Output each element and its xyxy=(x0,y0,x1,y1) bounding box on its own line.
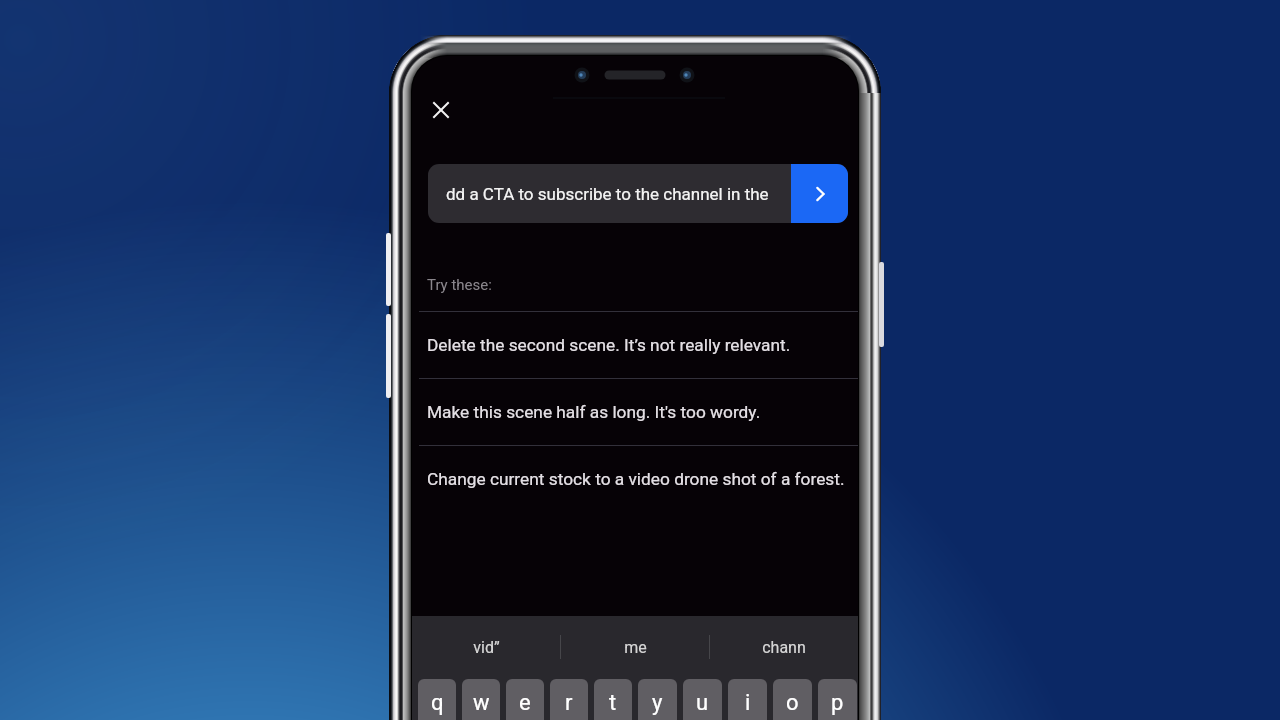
button[interactable]: i xyxy=(728,679,767,720)
button[interactable]: y xyxy=(638,679,677,720)
staticText: i xyxy=(745,690,751,716)
button[interactable]: w xyxy=(462,679,500,720)
staticText: chann xyxy=(762,638,806,657)
button[interactable]: e xyxy=(506,679,544,720)
staticText: u xyxy=(696,690,709,716)
button[interactable]: p xyxy=(818,679,857,720)
button[interactable]: Make this scene half as long. It's too w… xyxy=(412,379,858,445)
staticText: t xyxy=(609,690,617,716)
staticText: o xyxy=(786,690,799,716)
staticText: y xyxy=(652,690,663,716)
staticText: w xyxy=(473,690,490,716)
button[interactable]: vid” xyxy=(412,616,560,678)
staticText: q xyxy=(431,690,444,716)
button[interactable]: r xyxy=(550,679,588,720)
staticText: Delete the second scene. It’s not really… xyxy=(427,335,791,355)
button[interactable]: me xyxy=(561,616,709,678)
staticText: p xyxy=(831,690,844,716)
button[interactable]: t xyxy=(594,679,632,720)
button[interactable]: dd a CTA to subscribe to the channel in … xyxy=(428,164,848,223)
staticText: e xyxy=(519,690,531,716)
staticText: dd a CTA to subscribe to the channel in … xyxy=(446,184,785,204)
staticText: me xyxy=(624,638,647,657)
staticText: Try these: xyxy=(427,276,492,294)
staticText: Change current stock to a video drone sh… xyxy=(427,469,845,489)
button[interactable]: chann xyxy=(710,616,858,678)
button[interactable]: u xyxy=(683,679,722,720)
button[interactable]: q xyxy=(418,679,456,720)
button[interactable]: Delete the second scene. It’s not really… xyxy=(412,312,858,378)
button[interactable]: Change current stock to a video drone sh… xyxy=(412,446,858,512)
button[interactable]: Send xyxy=(791,164,848,223)
staticText: Make this scene half as long. It's too w… xyxy=(427,402,761,422)
button[interactable]: o xyxy=(773,679,812,720)
button[interactable]: Close xyxy=(419,88,463,132)
staticText: r xyxy=(565,690,573,716)
staticText: vid” xyxy=(473,638,500,657)
